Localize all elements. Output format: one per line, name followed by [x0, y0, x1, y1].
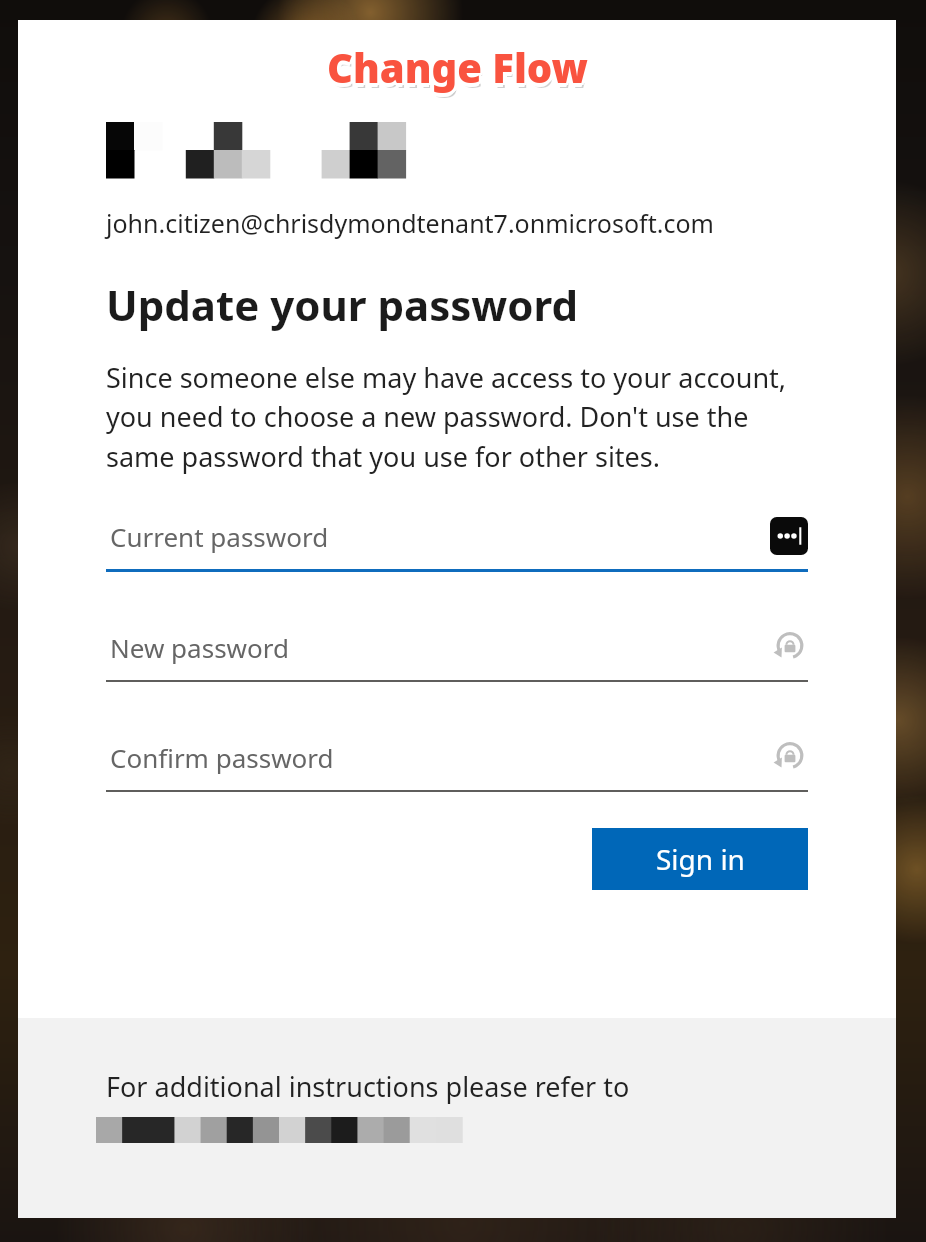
- staticText: Sign in: [656, 840, 745, 878]
- button[interactable]: Confirm password: [106, 732, 808, 792]
- staticText: Change Flow: [327, 37, 588, 91]
- staticText: Since someone else may have access to yo…: [106, 359, 808, 475]
- staticText: john.citizen@chrisdymondtenant7.onmicros…: [106, 206, 714, 240]
- button[interactable]: Show password: [770, 517, 808, 555]
- button[interactable]: Generate new password: [772, 629, 808, 665]
- staticText: Change Flow: [331, 40, 592, 94]
- button[interactable]: Generate confirm password: [772, 739, 808, 775]
- staticText: Change Flow: [327, 40, 588, 94]
- staticText: Change Flow: [325, 38, 586, 92]
- staticText: Change Flow: [329, 42, 590, 96]
- staticText: Current password: [110, 519, 770, 554]
- button[interactable]: New password: [106, 622, 808, 682]
- staticText: Update your password: [106, 276, 578, 333]
- button[interactable]: Instructions link: [96, 1117, 462, 1143]
- staticText: Change Flow: [323, 40, 584, 94]
- staticText: Change Flow: [329, 45, 590, 99]
- staticText: New password: [110, 630, 772, 665]
- staticText: Change Flow: [329, 38, 590, 92]
- staticText: Change Flow: [327, 44, 588, 98]
- staticText: Confirm password: [110, 740, 772, 775]
- button[interactable]: Current password: [106, 511, 808, 572]
- staticText: Change Flow: [324, 40, 585, 94]
- staticText: Change Flow: [327, 36, 588, 90]
- staticText: Change Flow: [325, 42, 586, 96]
- staticText: Change Flow: [330, 40, 591, 94]
- staticText: For additional instructions please refer…: [106, 1068, 630, 1105]
- staticText: Change Flow: [327, 43, 588, 97]
- button[interactable]: Sign in: [592, 828, 808, 890]
